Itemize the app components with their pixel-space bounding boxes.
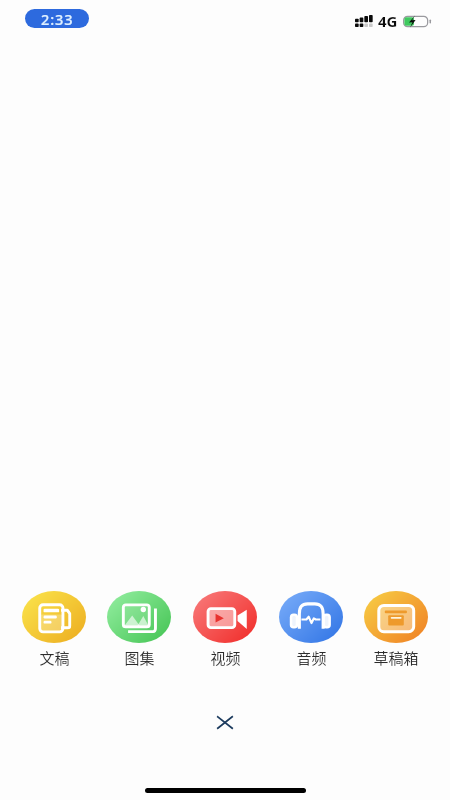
button[interactable]: 视频 <box>193 591 257 669</box>
button[interactable]: Close <box>203 700 247 744</box>
staticText: 图集 <box>124 647 155 669</box>
staticText: 音频 <box>296 647 327 669</box>
button[interactable]: 草稿箱 <box>364 591 428 669</box>
staticText: 2:33 <box>41 9 74 28</box>
staticText: 文稿 <box>39 647 70 669</box>
button[interactable]: 图集 <box>107 591 171 669</box>
button[interactable]: 音频 <box>279 591 343 669</box>
staticText: 4G <box>378 11 398 31</box>
staticText: 草稿箱 <box>373 647 419 669</box>
staticText: 视频 <box>210 647 241 669</box>
button[interactable]: 文稿 <box>22 591 86 669</box>
